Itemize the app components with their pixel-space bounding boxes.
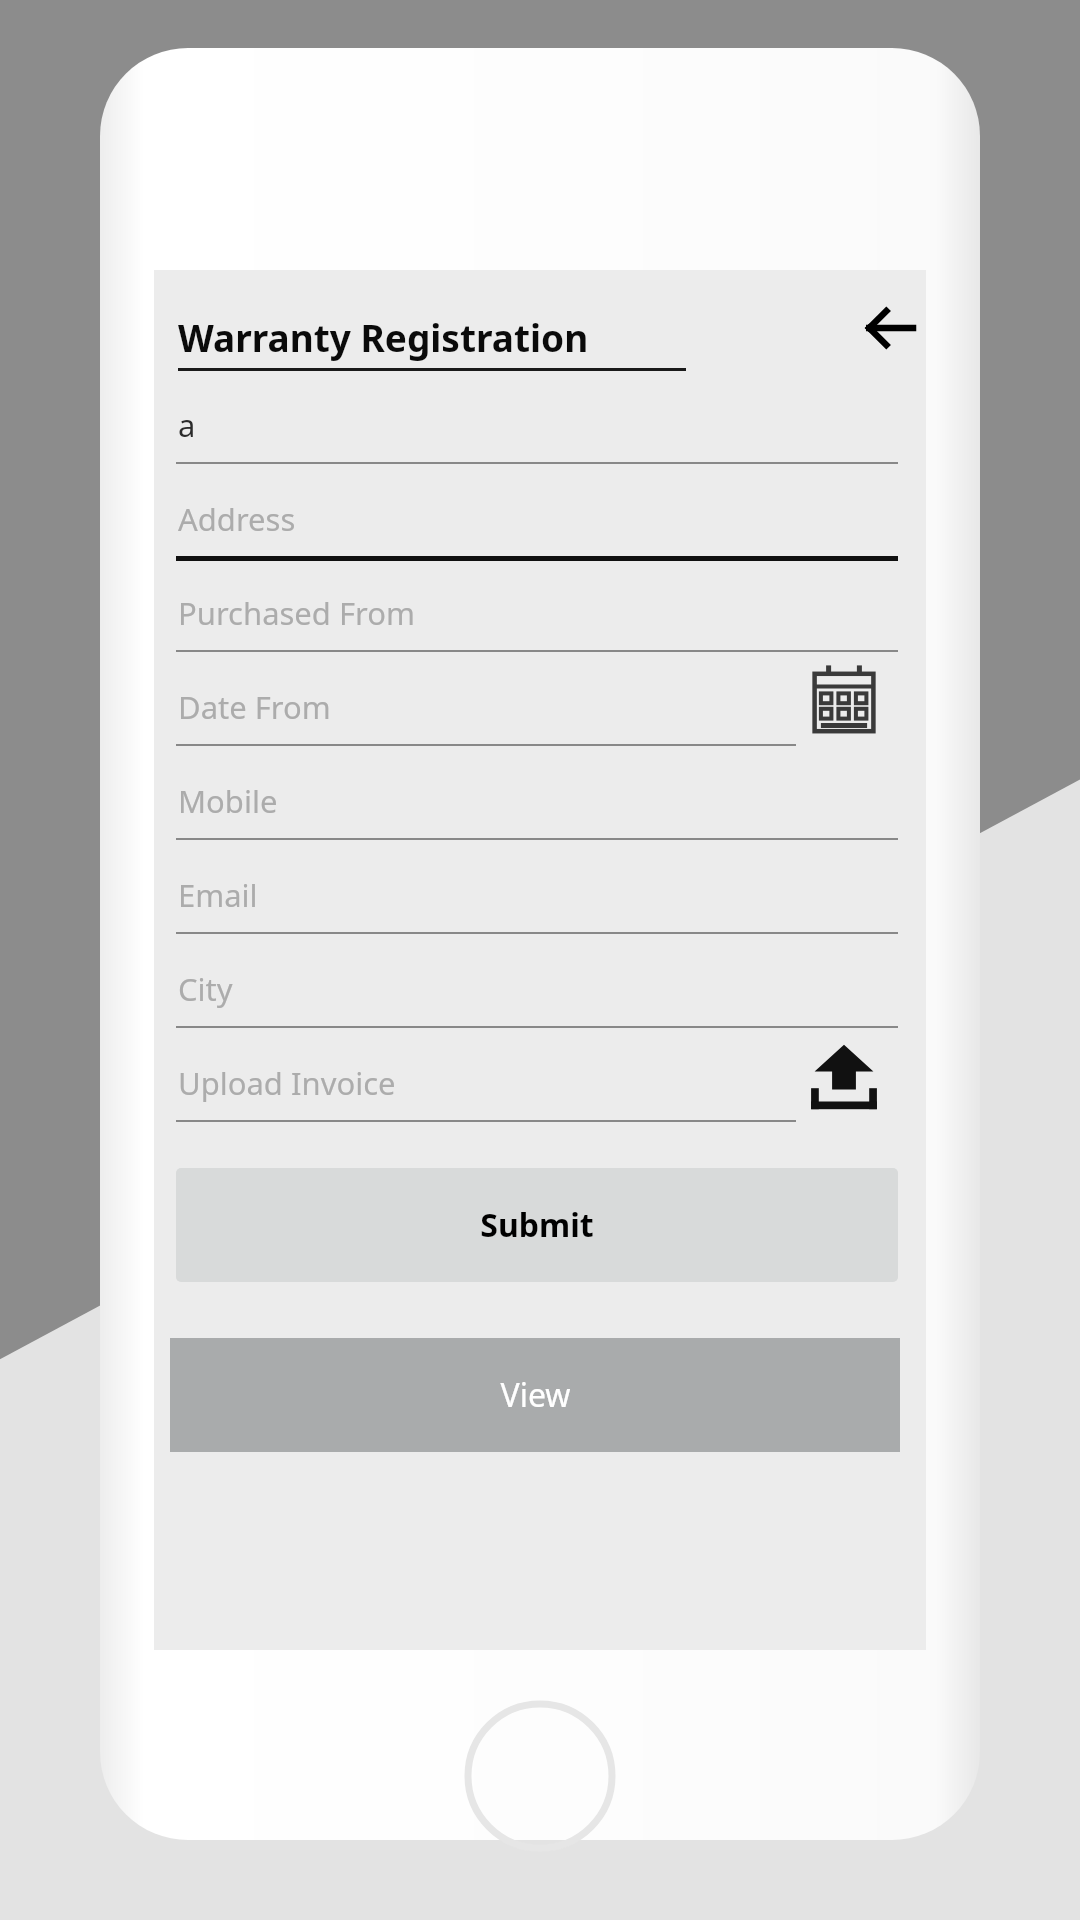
staticText: Mobile xyxy=(178,780,278,822)
button[interactable]: Submit xyxy=(176,1168,898,1282)
button[interactable]: City xyxy=(176,962,898,1044)
staticText: Warranty Registration xyxy=(178,312,589,362)
button[interactable]: Address xyxy=(176,492,898,574)
button[interactable]: View xyxy=(170,1338,900,1452)
staticText: Date From xyxy=(178,686,331,728)
staticText: Email xyxy=(178,874,258,916)
button[interactable]: Upload invoice xyxy=(809,1042,879,1112)
staticText: Address xyxy=(178,498,296,540)
staticText: Purchased From xyxy=(178,592,415,634)
button[interactable]: Purchased From xyxy=(176,586,898,668)
button[interactable]: Upload Invoice xyxy=(176,1056,898,1138)
button[interactable]: Date From xyxy=(176,680,898,762)
button[interactable]: Email xyxy=(176,868,898,950)
button[interactable]: Pick date xyxy=(809,664,879,734)
staticText: City xyxy=(178,968,233,1010)
button[interactable]: a xyxy=(176,398,898,480)
staticText: Upload Invoice xyxy=(178,1062,396,1104)
staticText: Submit xyxy=(480,1203,594,1247)
staticText: View xyxy=(500,1373,571,1417)
staticText: a xyxy=(178,404,196,446)
button[interactable]: Mobile xyxy=(176,774,898,856)
button[interactable]: Back xyxy=(854,292,926,364)
